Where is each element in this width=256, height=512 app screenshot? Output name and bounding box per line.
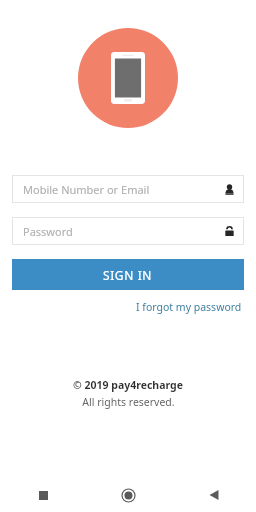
- staticText: Mobile Number or Email: [23, 182, 224, 197]
- other: Password: [224, 226, 235, 237]
- button[interactable]: Recents: [0, 478, 86, 512]
- staticText: © 2019 pay4recharge: [73, 378, 183, 392]
- staticText: Password: [23, 224, 224, 239]
- staticText: SIGN IN: [103, 267, 153, 283]
- staticText: All rights reserved.: [82, 395, 175, 409]
- button[interactable]: Home: [86, 478, 171, 512]
- button[interactable]: Back: [171, 478, 256, 512]
- staticText: I forgot my password: [136, 300, 242, 314]
- button[interactable]: SIGN IN: [12, 259, 244, 290]
- other: Account: [224, 184, 235, 195]
- button[interactable]: Mobile Number or Email: [12, 175, 244, 203]
- button[interactable]: Password: [12, 217, 244, 245]
- button[interactable]: I forgot my password: [134, 298, 244, 316]
